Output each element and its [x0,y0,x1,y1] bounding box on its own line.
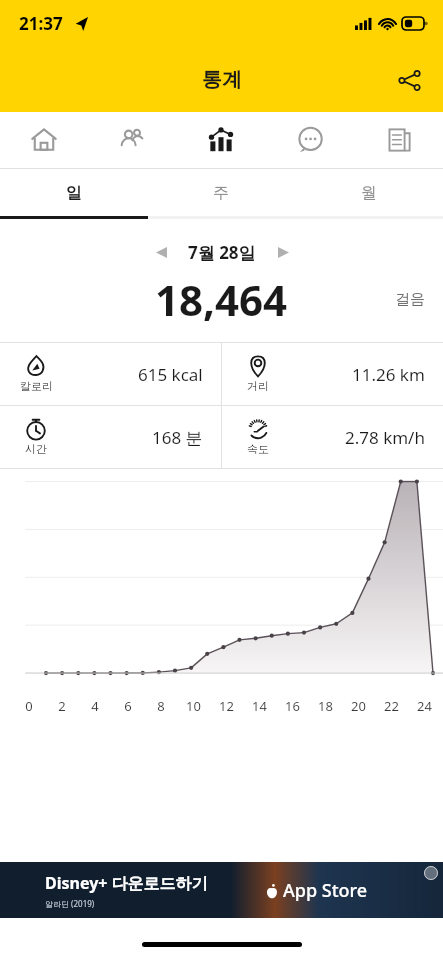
staticText: 칼로리 [20,379,53,393]
button[interactable]: 주 [147,169,295,216]
staticText: 걸음 [395,290,425,309]
staticText: 18,464 [155,271,288,328]
staticText: 6 [124,697,132,715]
button[interactable]: Friends [88,112,176,168]
button[interactable]: Disney+ 다운로드하기 [0,862,443,918]
staticText: 8 [157,697,165,715]
staticText: 알라딘 (2019) [45,898,95,909]
staticText: 주 [213,183,229,203]
staticText: 12 [219,697,234,715]
staticText: 월 [361,183,377,203]
staticText: 24 [417,697,432,715]
staticText: 18 [318,697,333,715]
button[interactable]: 시간 [0,406,221,468]
staticText: 2 [58,697,66,715]
staticText: 21:37 [19,12,63,35]
staticText: App Store [283,878,368,903]
button[interactable]: News [354,112,443,168]
button[interactable]: 칼로리 [0,343,221,405]
button[interactable]: Previous day [144,235,178,269]
staticText: 16 [285,697,300,715]
staticText: 속도 [247,442,269,456]
staticText: 14 [252,697,267,715]
button[interactable]: Share [385,56,433,104]
staticText: 11.26 km [352,363,425,386]
button[interactable]: 월 [295,169,443,216]
staticText: Disney+ 다운로드하기 [45,872,208,894]
button[interactable]: Next day [266,235,300,269]
staticText: 2.78 km/h [345,426,425,449]
staticText: 615 kcal [138,363,203,386]
button[interactable]: Chat [265,112,354,168]
staticText: 통계 [202,67,242,92]
button[interactable]: 거리 [222,343,443,405]
staticText: 20 [351,697,366,715]
button[interactable]: Home [0,112,88,168]
staticText: 일 [66,183,82,203]
staticText: 10 [186,697,201,715]
staticText: 거리 [247,379,269,393]
button[interactable]: Statistics [176,112,265,168]
button[interactable]: 일 [0,169,147,216]
staticText: 0 [25,697,33,715]
button[interactable]: 속도 [222,406,443,468]
staticText: 4 [91,697,99,715]
staticText: 22 [384,697,399,715]
staticText: 7월 28일 [188,241,256,264]
staticText: 168 분 [152,426,203,449]
staticText: 시간 [25,442,47,456]
button[interactable]: Ad info [424,866,438,880]
